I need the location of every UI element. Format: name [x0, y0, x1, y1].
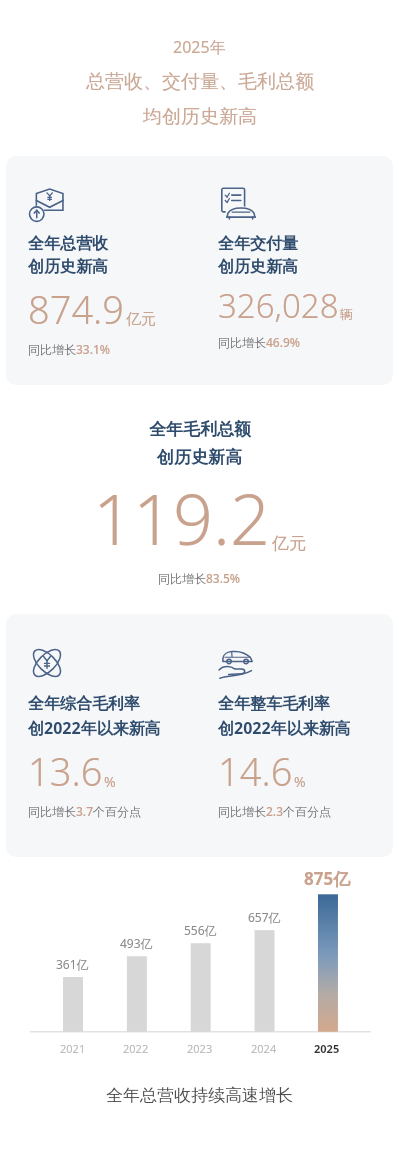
- staticText: 亿元: [272, 533, 306, 554]
- staticText: 119.2: [93, 470, 270, 565]
- staticText: 2022: [123, 1041, 149, 1056]
- staticText: 均创历史新高: [143, 105, 257, 129]
- button[interactable]: Gross margin: [6, 614, 393, 857]
- staticText: 同比增长83.5%: [158, 570, 241, 586]
- staticText: 全年整车毛利率: [218, 694, 330, 714]
- staticText: 493亿: [120, 935, 153, 951]
- staticText: 同比增长3.7个百分点: [28, 803, 141, 819]
- staticText: 创2022年以来新高: [28, 717, 161, 739]
- staticText: 13.6: [28, 745, 103, 797]
- staticText: 361亿: [56, 956, 89, 972]
- other: Deliveries: [218, 186, 256, 224]
- other: Gross margin: [28, 644, 66, 682]
- staticText: 全年交付量: [218, 234, 298, 254]
- staticText: 创历史新高: [28, 257, 108, 277]
- staticText: 创2022年以来新高: [218, 717, 351, 739]
- staticText: 亿元: [126, 310, 156, 329]
- staticText: 全年综合毛利率: [28, 694, 140, 714]
- staticText: 2024: [251, 1041, 277, 1056]
- staticText: 2025年: [173, 36, 226, 58]
- staticText: 14.6: [218, 745, 293, 797]
- staticText: 874.9: [28, 283, 125, 335]
- staticText: 同比增长33.1%: [28, 341, 111, 357]
- staticText: 创历史新高: [218, 257, 298, 277]
- staticText: 875亿: [304, 867, 351, 890]
- staticText: %: [294, 772, 306, 791]
- staticText: 556亿: [184, 922, 217, 938]
- staticText: 创历史新高: [157, 447, 242, 468]
- staticText: 2025: [314, 1041, 340, 1056]
- button[interactable]: Total revenue: [6, 156, 393, 385]
- staticText: 辆: [340, 306, 353, 322]
- staticText: 同比增长46.9%: [218, 334, 301, 350]
- other: Total revenue: [28, 186, 66, 224]
- staticText: 657亿: [248, 909, 281, 925]
- staticText: 总营收、交付量、毛利总额: [86, 70, 314, 94]
- staticText: 全年毛利总额: [149, 419, 251, 440]
- other: Vehicle margin: [218, 644, 256, 682]
- staticText: 2023: [187, 1041, 213, 1056]
- staticText: 2021: [60, 1041, 86, 1056]
- staticText: 326,028: [218, 283, 339, 328]
- staticText: 全年总营收: [28, 234, 108, 254]
- staticText: 同比增长2.3个百分点: [218, 803, 331, 819]
- staticText: %: [104, 772, 116, 791]
- staticText: 全年总营收持续高速增长: [0, 1085, 399, 1106]
